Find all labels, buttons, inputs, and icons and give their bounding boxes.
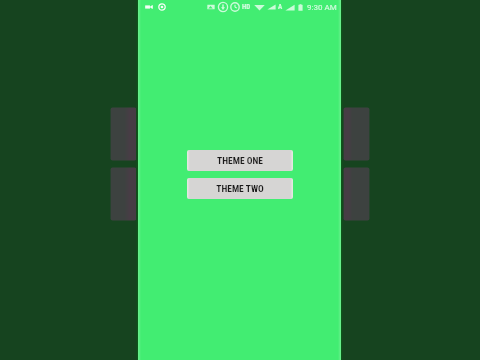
staticText: THEME TWO [216, 183, 264, 194]
staticText: 9:30 AM [307, 3, 337, 12]
staticText: A [278, 3, 283, 11]
staticText: HD [242, 3, 251, 11]
button[interactable]: THEME ONE [187, 150, 293, 171]
button[interactable]: THEME TWO [187, 178, 293, 199]
staticText: THEME ONE [217, 155, 263, 166]
